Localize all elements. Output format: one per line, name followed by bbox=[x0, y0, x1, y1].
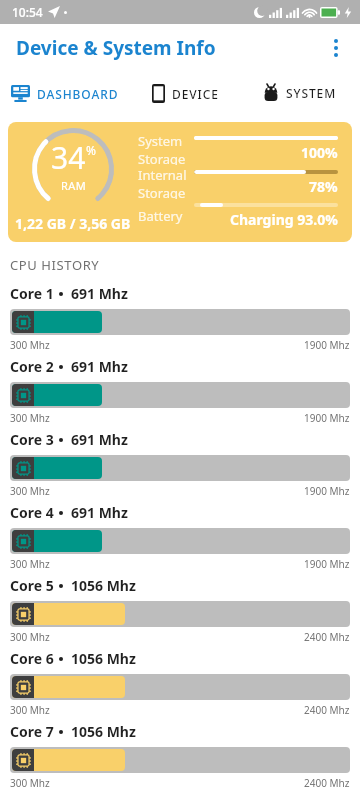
button[interactable]: DEVICE bbox=[130, 84, 240, 103]
staticText: 300 Mhz bbox=[10, 557, 50, 571]
staticText: System Storage bbox=[138, 132, 186, 165]
staticText: 10:54 bbox=[12, 4, 43, 20]
staticText: 691 Mhz bbox=[71, 284, 128, 303]
staticText: 691 Mhz bbox=[71, 503, 128, 522]
staticText: 300 Mhz bbox=[10, 630, 50, 644]
staticText: Core 7 bbox=[10, 722, 54, 741]
staticText: Core 2 bbox=[10, 357, 54, 376]
staticText: Device & System Info bbox=[16, 35, 216, 61]
staticText: 2400 Mhz bbox=[304, 630, 350, 644]
staticText: Internal Storage bbox=[138, 166, 187, 199]
staticText: 300 Mhz bbox=[10, 703, 50, 717]
staticText: Core 4 bbox=[10, 503, 54, 522]
button[interactable]: 34 bbox=[8, 122, 352, 242]
staticText: 300 Mhz bbox=[10, 776, 50, 790]
staticText: 1056 Mhz bbox=[71, 722, 136, 741]
staticText: 300 Mhz bbox=[10, 484, 50, 498]
staticText: 1056 Mhz bbox=[71, 649, 136, 668]
staticText: Battery bbox=[138, 207, 183, 225]
staticText: Core 6 bbox=[10, 649, 54, 668]
staticText: Core 5 bbox=[10, 576, 54, 595]
staticText: 1900 Mhz bbox=[304, 557, 350, 571]
staticText: 78% bbox=[309, 177, 338, 196]
staticText: 1,22 GB / 3,56 GB bbox=[15, 214, 131, 233]
staticText: Core 3 bbox=[10, 430, 54, 449]
staticText: 1900 Mhz bbox=[304, 484, 350, 498]
staticText: 2400 Mhz bbox=[304, 776, 350, 790]
button[interactable]: More options bbox=[312, 24, 360, 72]
staticText: % bbox=[86, 142, 96, 158]
staticText: 1056 Mhz bbox=[71, 576, 136, 595]
staticText: CPU HISTORY bbox=[10, 256, 100, 274]
staticText: 34 bbox=[51, 137, 86, 178]
staticText: 691 Mhz bbox=[71, 430, 128, 449]
staticText: 100% bbox=[301, 143, 338, 162]
staticText: RAM bbox=[61, 178, 87, 193]
button[interactable]: SYSTEM bbox=[240, 84, 360, 102]
staticText: 300 Mhz bbox=[10, 411, 50, 425]
staticText: 300 Mhz bbox=[10, 338, 50, 352]
staticText: 691 Mhz bbox=[71, 357, 128, 376]
staticText: 1900 Mhz bbox=[304, 338, 350, 352]
button[interactable]: DASHBOARD bbox=[0, 85, 130, 102]
staticText: SYSTEM bbox=[286, 85, 337, 101]
staticText: DEVICE bbox=[172, 86, 219, 102]
staticText: 2400 Mhz bbox=[304, 703, 350, 717]
staticText: Core 1 bbox=[10, 284, 54, 303]
staticText: Charging 93.0% bbox=[230, 210, 338, 229]
staticText: DASHBOARD bbox=[37, 86, 119, 102]
staticText: 1900 Mhz bbox=[304, 411, 350, 425]
